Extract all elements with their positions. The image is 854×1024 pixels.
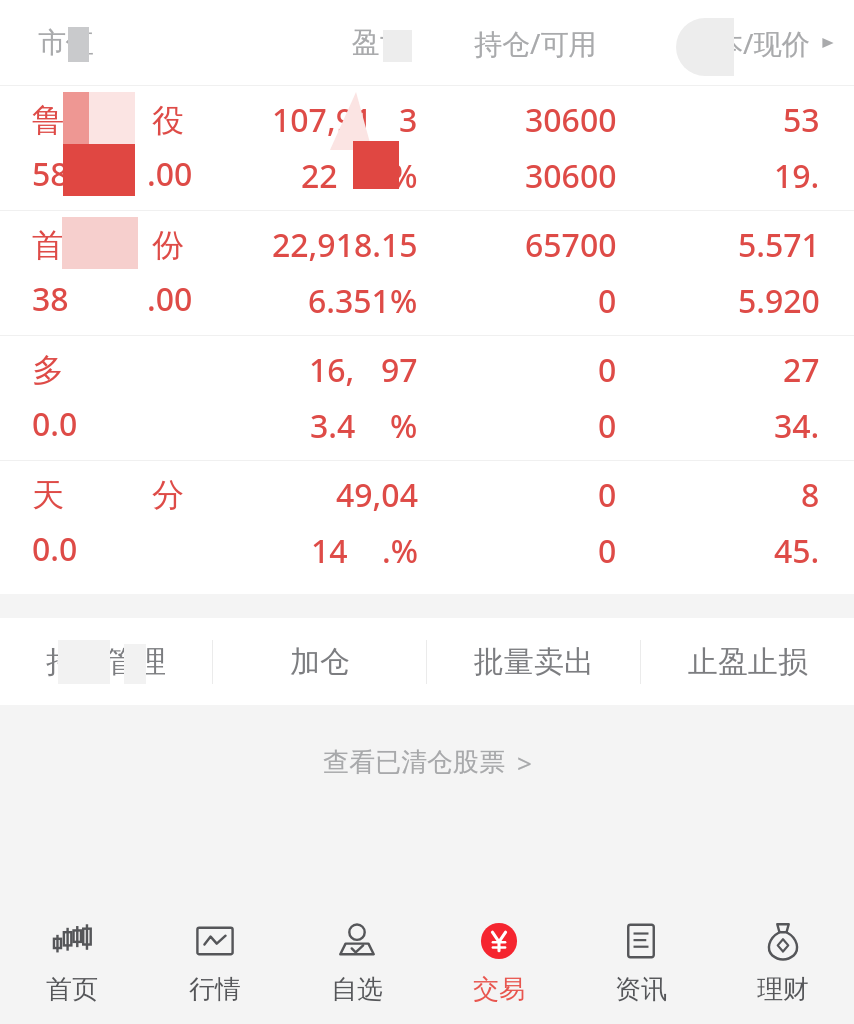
- staticText: %: [390, 404, 418, 448]
- staticText: 3.4: [310, 404, 356, 448]
- button[interactable]: 资讯: [570, 900, 712, 1024]
- staticText: 天: [32, 475, 64, 515]
- staticText: 多: [32, 350, 64, 390]
- staticText: 14: [311, 529, 348, 573]
- staticText: 0: [598, 473, 617, 517]
- button[interactable]: 鲁: [0, 86, 854, 210]
- staticText: 首: [32, 225, 64, 265]
- button[interactable]: 批量卖出: [427, 618, 640, 705]
- staticText: 份: [152, 225, 184, 265]
- staticText: 107,91: [272, 98, 373, 142]
- staticText: 加仓: [290, 643, 350, 681]
- button[interactable]: 止盈止损: [641, 618, 854, 705]
- staticText: 49,04: [336, 473, 418, 517]
- staticText: 22: [301, 154, 338, 198]
- staticText: 市值: [38, 25, 94, 60]
- staticText: 0%: [372, 154, 418, 198]
- staticText: 58: [32, 152, 69, 196]
- staticText: 53: [783, 98, 820, 142]
- staticText: 0: [598, 404, 617, 448]
- staticText: 持仓/可用: [474, 24, 597, 62]
- staticText: 0: [598, 348, 617, 392]
- button[interactable]: 首: [0, 211, 854, 335]
- staticText: 8: [801, 473, 820, 517]
- staticText: 30600: [525, 98, 617, 142]
- staticText: 批量卖出: [474, 643, 594, 681]
- staticText: >: [517, 745, 532, 780]
- staticText: 理财: [757, 973, 809, 1006]
- staticText: 16,: [309, 348, 355, 392]
- staticText: 97: [381, 348, 418, 392]
- staticText: 役: [152, 100, 184, 140]
- staticText: 0.0: [32, 527, 78, 571]
- staticText: 行情: [189, 973, 241, 1006]
- staticText: 22,918.15: [272, 223, 418, 267]
- button[interactable]: 交易: [428, 900, 570, 1024]
- staticText: 30600: [525, 154, 617, 198]
- button[interactable]: 多: [0, 336, 854, 460]
- staticText: 查看已清仓股票: [323, 746, 505, 779]
- staticText: .%: [382, 529, 418, 573]
- staticText: 34.: [774, 404, 820, 448]
- staticText: 27: [783, 348, 820, 392]
- staticText: 0: [598, 279, 617, 323]
- staticText: 成本/现价: [687, 24, 810, 62]
- staticText: 5.571: [738, 223, 820, 267]
- staticText: 0.0: [32, 402, 78, 446]
- staticText: 19.: [774, 154, 820, 198]
- staticText: 盈亏: [352, 25, 408, 60]
- button[interactable]: 查看已清仓股票: [305, 735, 550, 790]
- button[interactable]: 加仓: [213, 618, 426, 705]
- button[interactable]: 理财: [712, 900, 854, 1024]
- staticText: .00: [147, 277, 193, 321]
- staticText: 自选: [331, 973, 383, 1006]
- staticText: 3: [399, 98, 418, 142]
- button[interactable]: 天: [0, 461, 854, 585]
- staticText: 止盈止损: [688, 643, 808, 681]
- staticText: 分: [152, 475, 184, 515]
- button[interactable]: 自选: [286, 900, 428, 1024]
- button[interactable]: 持仓管理: [0, 618, 212, 705]
- staticText: 38: [32, 277, 69, 321]
- staticText: 6.351%: [308, 279, 418, 323]
- staticText: 0: [598, 529, 617, 573]
- staticText: 交易: [473, 973, 525, 1006]
- button[interactable]: 首页: [0, 900, 143, 1024]
- staticText: 65700: [525, 223, 617, 267]
- button[interactable]: 行情: [143, 900, 286, 1024]
- staticText: 首页: [46, 973, 98, 1006]
- staticText: 鲁: [32, 100, 64, 140]
- staticText: .00: [147, 152, 193, 196]
- staticText: 持仓管理: [46, 643, 166, 681]
- staticText: 5.920: [738, 279, 820, 323]
- staticText: 45.: [774, 529, 820, 573]
- staticText: 资讯: [615, 973, 667, 1006]
